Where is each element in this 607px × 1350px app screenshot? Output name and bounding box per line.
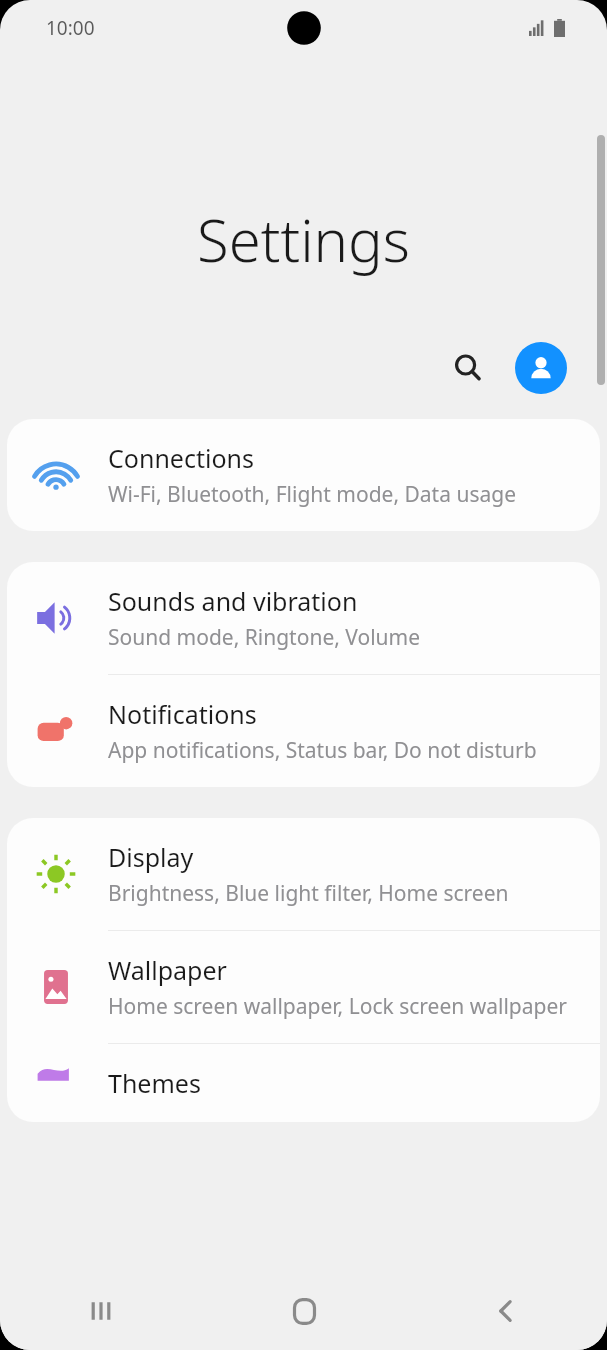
button[interactable]: Account xyxy=(515,342,567,394)
button[interactable]: Sounds and vibration xyxy=(7,562,600,674)
staticText: Sounds and vibration xyxy=(108,584,358,618)
staticText: Home screen wallpaper, Lock screen wallp… xyxy=(108,992,567,1021)
button[interactable]: Back xyxy=(471,1276,541,1346)
staticText: Notifications xyxy=(108,697,257,731)
button[interactable]: Display xyxy=(7,818,600,930)
staticText: Wallpaper xyxy=(108,953,227,987)
button[interactable]: Notifications xyxy=(7,675,600,787)
staticText: Wi-Fi, Bluetooth, Flight mode, Data usag… xyxy=(108,480,517,509)
button[interactable]: Wallpaper xyxy=(7,931,600,1043)
button[interactable]: Recents xyxy=(66,1276,136,1346)
staticText: Display xyxy=(108,840,194,874)
button[interactable]: Home xyxy=(269,1276,339,1346)
staticText: App notifications, Status bar, Do not di… xyxy=(108,736,537,765)
button[interactable]: Connections xyxy=(7,419,600,531)
button[interactable]: Themes xyxy=(7,1044,600,1122)
staticText: Sound mode, Ringtone, Volume xyxy=(108,623,421,652)
button[interactable]: Search xyxy=(441,341,495,395)
staticText: Settings xyxy=(0,200,607,279)
staticText: Themes xyxy=(108,1066,201,1100)
staticText: Connections xyxy=(108,441,254,475)
staticText: Brightness, Blue light filter, Home scre… xyxy=(108,879,509,908)
staticText: 10:00 xyxy=(46,15,95,41)
